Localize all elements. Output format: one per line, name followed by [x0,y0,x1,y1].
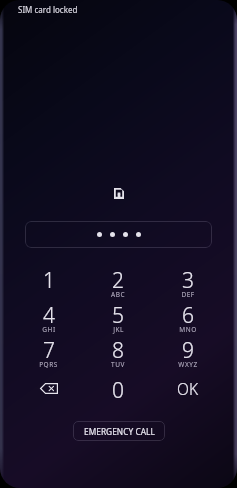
staticText: 3 [182,266,194,295]
button[interactable]: 3 [153,264,223,299]
button[interactable]: 9 [153,334,223,369]
staticText: DEF [181,290,195,299]
button[interactable]: 2 [83,264,153,299]
button[interactable]: 6 [153,299,223,334]
button[interactable]: 5 [83,299,153,334]
staticText: WXYZ [178,360,198,369]
staticText: 1 [43,266,55,295]
staticText: 9 [182,336,194,365]
staticText: MNO [179,325,197,334]
button[interactable]: 0 [83,369,153,409]
other: SIM card [114,188,124,199]
staticText: ABC [111,290,125,299]
button[interactable] [25,221,212,248]
staticText: 4 [43,301,55,330]
button[interactable]: 1 [14,264,83,299]
staticText: 8 [112,336,124,365]
button[interactable]: Delete [14,369,83,409]
button[interactable]: EMERGENCY CALL [73,421,165,441]
staticText: 2 [112,266,124,295]
button[interactable]: 7 [14,334,83,369]
staticText: JKL [113,325,124,334]
staticText: PQRS [39,360,58,369]
button[interactable]: OK [153,369,223,409]
staticText: 0 [112,376,124,405]
staticText: GHI [42,325,56,334]
staticText: 5 [112,301,124,330]
staticText: TUV [111,360,125,369]
staticText: EMERGENCY CALL [84,426,155,437]
staticText: SIM card locked [18,4,78,15]
button[interactable]: 4 [14,299,83,334]
staticText: 6 [182,301,194,330]
staticText: 7 [43,336,55,365]
staticText: OK [177,378,199,399]
button[interactable]: 8 [83,334,153,369]
